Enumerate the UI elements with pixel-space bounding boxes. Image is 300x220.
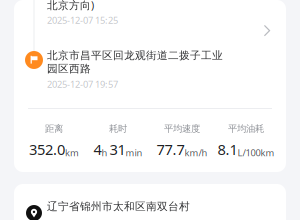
- staticText: 2025-12-07 15:25: [47, 14, 118, 26]
- staticText: 耗时: [109, 123, 127, 134]
- staticText: 平均速度: [164, 123, 200, 134]
- staticText: min: [125, 146, 142, 159]
- button[interactable]: 辽宁省锦州市太和区南双台村: [14, 184, 286, 220]
- staticText: 4: [93, 139, 101, 159]
- staticText: h: [101, 146, 109, 159]
- staticText: 31: [109, 139, 125, 159]
- staticText: L/100km: [237, 146, 274, 159]
- staticText: 352.0: [29, 139, 65, 159]
- staticText: 8.1: [217, 139, 237, 159]
- staticText: 北京方向): [47, 0, 94, 12]
- staticText: km: [65, 146, 79, 159]
- staticText: 平均油耗: [228, 123, 264, 134]
- staticText: 距离: [45, 123, 63, 134]
- staticText: 辽宁省锦州市太和区南双台村: [47, 200, 190, 213]
- staticText: km/h: [184, 146, 207, 159]
- staticText: 北京市昌平区回龙观街道二拨子工业园区西路: [47, 49, 223, 75]
- staticText: 77.7: [156, 139, 184, 159]
- button[interactable]: 北京方向): [14, 0, 286, 172]
- staticText: 2025-12-07 19:57: [47, 78, 118, 90]
